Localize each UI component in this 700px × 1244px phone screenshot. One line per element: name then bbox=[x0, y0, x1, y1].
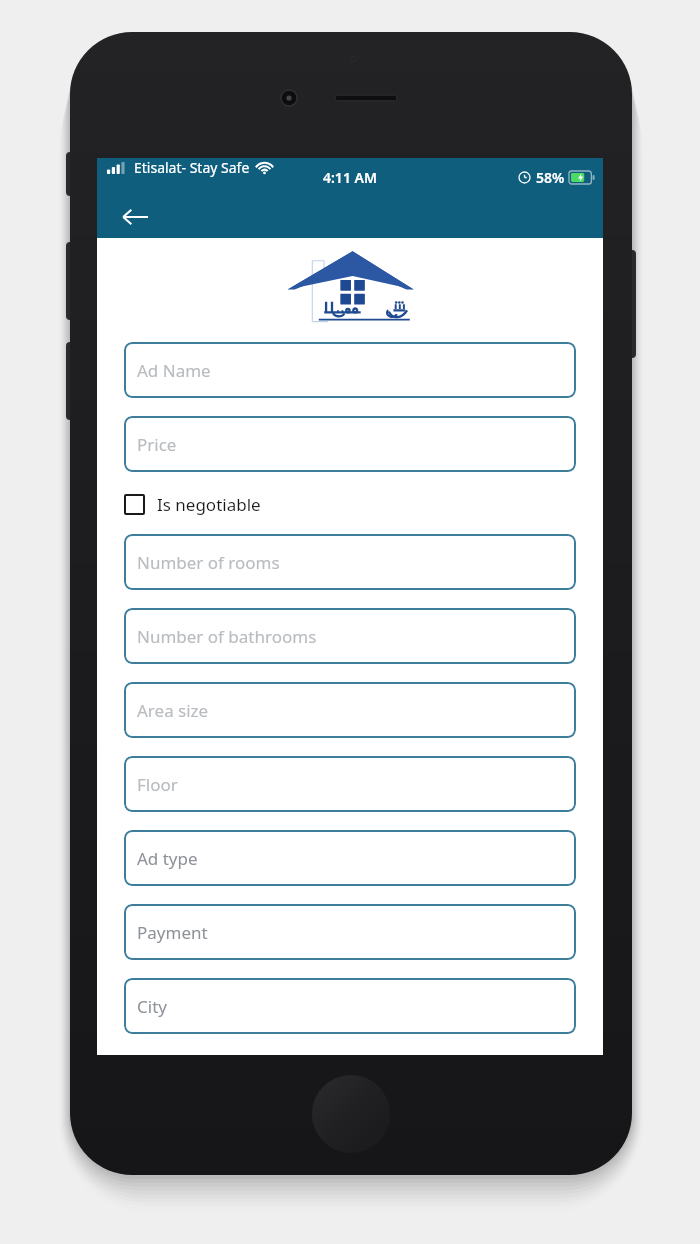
staticText: Number of bathrooms bbox=[137, 625, 317, 648]
staticText: Ad Name bbox=[137, 359, 211, 382]
staticText: Etisalat- Stay Safe bbox=[134, 158, 250, 177]
staticText: Is negotiable bbox=[157, 493, 261, 516]
button[interactable]: Area size bbox=[124, 682, 576, 738]
button[interactable]: City bbox=[124, 978, 576, 1034]
button[interactable]: Payment bbox=[124, 904, 576, 960]
staticText: Floor bbox=[137, 773, 178, 796]
button[interactable]: Back bbox=[113, 196, 157, 238]
button[interactable]: Floor bbox=[124, 756, 576, 812]
staticText: Number of rooms bbox=[137, 551, 280, 574]
staticText: Price bbox=[137, 433, 177, 456]
staticText: Area size bbox=[137, 699, 209, 722]
button[interactable]: Number of rooms bbox=[124, 534, 576, 590]
staticText: City bbox=[137, 995, 167, 1018]
other: Shaqati Al Jamila logo bbox=[285, 248, 415, 328]
button[interactable]: Number of bathrooms bbox=[124, 608, 576, 664]
button[interactable]: Is negotiable bbox=[124, 484, 576, 524]
staticText: 4:11 AM bbox=[323, 168, 377, 187]
staticText: 58% bbox=[536, 168, 565, 187]
staticText: Payment bbox=[137, 921, 208, 944]
staticText: Ad type bbox=[137, 847, 198, 870]
button[interactable]: Price bbox=[124, 416, 576, 472]
button[interactable]: Home bbox=[312, 1075, 390, 1153]
button[interactable]: Ad type bbox=[124, 830, 576, 886]
button[interactable]: Ad Name bbox=[124, 342, 576, 398]
